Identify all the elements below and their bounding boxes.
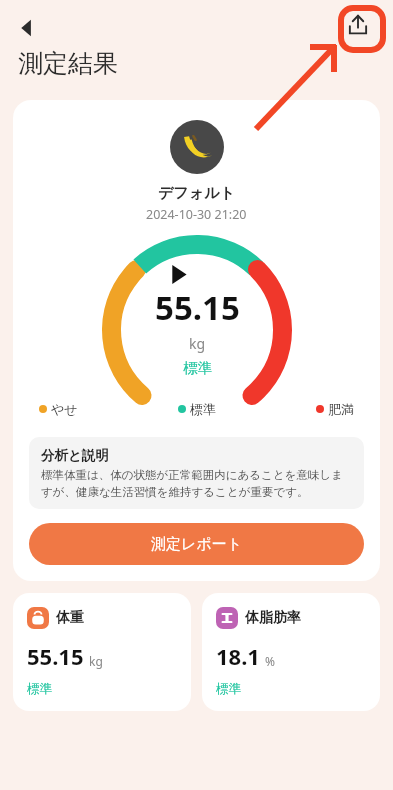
staticText: 体脂肪率 <box>245 609 301 627</box>
staticText: 体重 <box>56 609 84 627</box>
staticText: 標準 <box>27 681 52 697</box>
button[interactable]: Back <box>16 8 56 48</box>
staticText: 測定結果 <box>18 48 118 79</box>
staticText: 55.15 <box>27 641 84 671</box>
staticText: 肥満 <box>328 401 354 417</box>
staticText: 標準 <box>183 359 212 377</box>
staticText: % <box>265 653 275 669</box>
button[interactable]: Share <box>341 8 375 42</box>
staticText: 標準 <box>190 401 216 417</box>
staticText: デフォルト <box>158 184 235 203</box>
staticText: 2024-10-30 21:20 <box>146 206 247 223</box>
staticText: kg <box>189 334 206 353</box>
staticText: 18.1 <box>216 641 260 671</box>
button[interactable]: 体脂肪率 <box>202 593 380 711</box>
staticText: 55.15 <box>155 285 240 330</box>
button[interactable]: 測定レポート <box>29 523 364 565</box>
staticText: 測定レポート <box>151 535 243 554</box>
staticText: kg <box>89 653 103 669</box>
staticText: 標準 <box>216 681 241 697</box>
staticText: 分析と説明 <box>41 447 109 464</box>
staticText: 標準体重は、体の状態が正常範囲内にあることを意味しますが、健康な生活習慣を維持す… <box>41 468 352 499</box>
staticText: やせ <box>51 401 78 417</box>
button[interactable]: 体重 <box>13 593 191 711</box>
